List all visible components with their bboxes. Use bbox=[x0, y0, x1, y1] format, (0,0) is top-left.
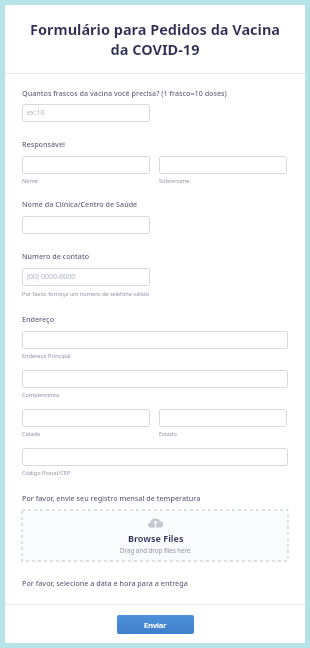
button[interactable] bbox=[22, 331, 288, 349]
button[interactable] bbox=[159, 409, 287, 427]
button[interactable] bbox=[22, 409, 150, 427]
button[interactable] bbox=[22, 370, 288, 388]
button[interactable] bbox=[22, 216, 150, 234]
staticText: Por favor, forneça um número de telefone… bbox=[22, 290, 150, 298]
staticText: Endereço bbox=[22, 314, 55, 324]
staticText: ex:10 bbox=[27, 108, 45, 118]
staticText: Por favor, envie seu registro mensal de … bbox=[22, 493, 201, 503]
button[interactable] bbox=[159, 156, 287, 174]
button[interactable]: Enviar bbox=[117, 615, 194, 634]
staticText: Complemento bbox=[22, 391, 60, 399]
staticText: Número de contato bbox=[22, 251, 90, 261]
staticText: Nome bbox=[22, 177, 39, 185]
button[interactable] bbox=[22, 448, 288, 466]
staticText: Formulário para Pedidos da Vacina da COV… bbox=[23, 19, 287, 59]
staticText: Sobrenome bbox=[159, 177, 190, 185]
staticText: Drag and drop files here bbox=[120, 546, 191, 554]
button[interactable]: (00) 0000-0000 bbox=[22, 268, 150, 286]
button[interactable]: ex:10 bbox=[22, 104, 150, 122]
staticText: Quantos frascos da vacina você precisa? … bbox=[22, 88, 227, 98]
staticText: (00) 0000-0000 bbox=[27, 272, 76, 282]
staticText: Estado bbox=[159, 430, 177, 438]
staticText: Responsável bbox=[22, 139, 65, 149]
staticText: Nome da Clínica/Centro de Saúde bbox=[22, 199, 138, 209]
button[interactable] bbox=[22, 156, 150, 174]
staticText: Código Postal/CEP bbox=[22, 469, 71, 477]
staticText: Por favor, selecione a data e hora para … bbox=[22, 578, 188, 588]
button[interactable]: Browse Files bbox=[22, 510, 288, 561]
staticText: Browse Files bbox=[128, 532, 184, 544]
staticText: Endereço Principal bbox=[22, 352, 71, 360]
staticText: Enviar bbox=[144, 620, 167, 630]
staticText: Cidade bbox=[22, 430, 41, 438]
